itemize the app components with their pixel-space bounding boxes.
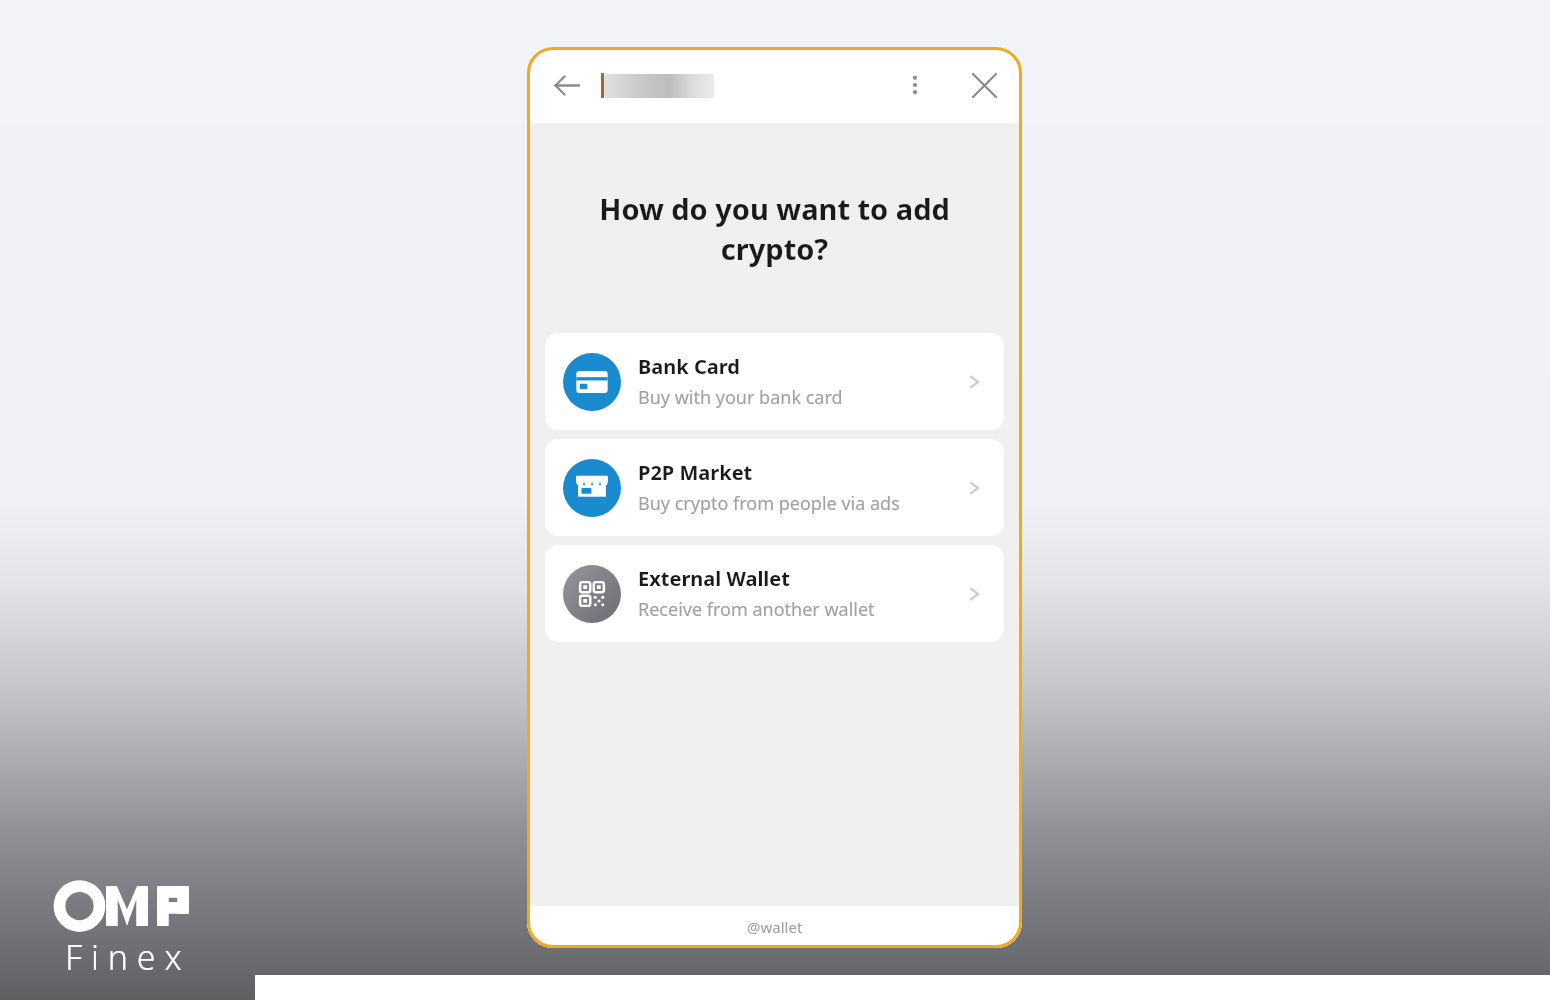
button[interactable]: Back — [543, 62, 589, 108]
staticText: Receive from another wallet — [638, 597, 875, 622]
button[interactable]: Bank Card — [545, 333, 1004, 430]
button[interactable]: More options — [894, 64, 936, 106]
button[interactable]: Close — [962, 63, 1006, 107]
staticText: External Wallet — [638, 565, 790, 592]
button[interactable]: External Wallet — [545, 545, 1004, 642]
staticText: @wallet — [747, 917, 803, 937]
staticText: Buy with your bank card — [638, 385, 843, 410]
staticText: P2P Market — [638, 459, 753, 486]
staticText: How do you want to add crypto? — [579, 189, 970, 269]
staticText: Buy crypto from people via ads — [638, 491, 900, 516]
staticText: Bank Card — [638, 353, 740, 380]
button[interactable]: P2P Market — [545, 439, 1004, 536]
staticText: F i n e x — [65, 934, 182, 980]
